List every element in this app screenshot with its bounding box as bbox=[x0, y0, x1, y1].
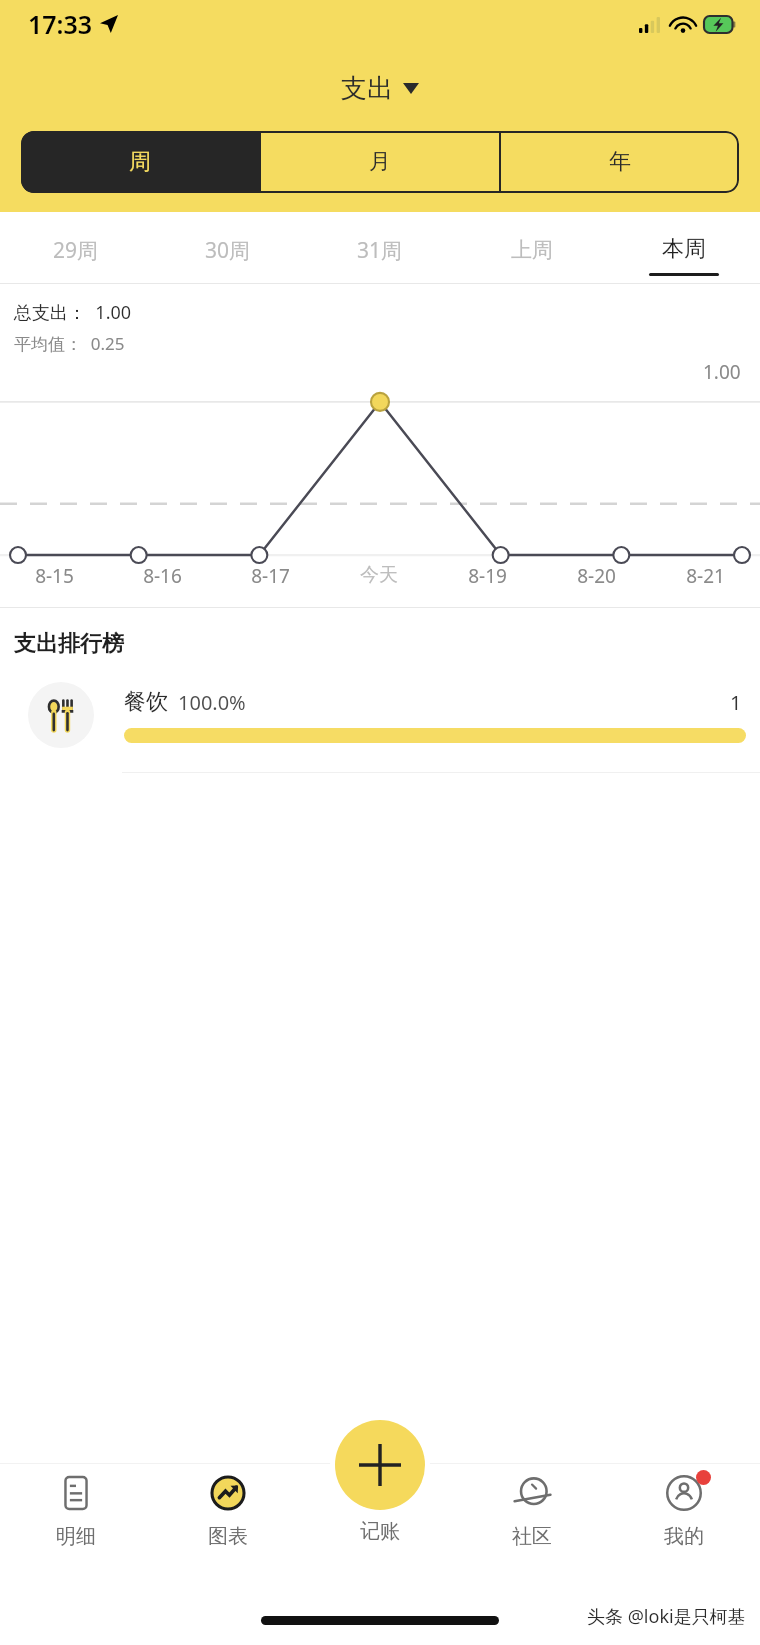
button[interactable]: 餐饮 bbox=[0, 682, 760, 748]
staticText: 餐饮 bbox=[124, 688, 168, 716]
staticText: 平均值： 0.25 bbox=[14, 332, 125, 355]
staticText: 1.00 bbox=[703, 359, 741, 385]
button[interactable]: 记账 Add bbox=[335, 1420, 425, 1510]
button[interactable]: 年 bbox=[501, 131, 739, 193]
button[interactable]: 本周 bbox=[608, 212, 760, 284]
button[interactable]: 30周 bbox=[152, 212, 304, 284]
button[interactable]: 29周 bbox=[0, 212, 152, 284]
staticText: 1 bbox=[730, 689, 742, 716]
staticText: 今天 bbox=[360, 563, 398, 587]
button[interactable]: 图表 bbox=[152, 1467, 304, 1553]
staticText: 总支出： 1.00 bbox=[14, 300, 132, 325]
staticText: 头条 @loki是只柯基 bbox=[587, 1604, 746, 1629]
staticText: 明细 bbox=[56, 1524, 96, 1549]
staticText: 记账 bbox=[360, 1519, 400, 1544]
staticText: 100.0% bbox=[178, 689, 246, 716]
button[interactable]: 我的 bbox=[608, 1467, 760, 1553]
staticText: 周 bbox=[129, 148, 151, 176]
button[interactable]: 社区 bbox=[456, 1467, 608, 1553]
staticText: 8-17 bbox=[251, 563, 290, 589]
staticText: 支出 bbox=[341, 72, 393, 105]
staticText: 8-15 bbox=[35, 563, 74, 589]
staticText: 上周 bbox=[511, 237, 553, 263]
staticText: 31周 bbox=[357, 236, 403, 265]
staticText: 图表 bbox=[208, 1524, 248, 1549]
button[interactable]: 月 bbox=[261, 131, 499, 193]
button[interactable]: 上周 bbox=[456, 212, 608, 284]
staticText: 支出排行榜 bbox=[14, 630, 124, 658]
staticText: 年 bbox=[609, 148, 631, 176]
staticText: 本周 bbox=[662, 235, 706, 263]
button[interactable]: 支出 bbox=[329, 68, 431, 109]
staticText: 社区 bbox=[512, 1524, 552, 1549]
staticText: 30周 bbox=[205, 236, 251, 265]
button[interactable]: 记账 bbox=[304, 1467, 456, 1544]
button[interactable]: 31周 bbox=[304, 212, 456, 284]
staticText: 8-16 bbox=[143, 563, 182, 589]
staticText: 29周 bbox=[53, 236, 99, 265]
staticText: 17:33 bbox=[28, 7, 93, 41]
staticText: 我的 bbox=[664, 1524, 704, 1549]
staticText: 8-21 bbox=[686, 563, 725, 589]
button[interactable]: 明细 bbox=[0, 1467, 152, 1553]
staticText: 8-19 bbox=[468, 563, 507, 589]
staticText: 月 bbox=[369, 148, 391, 176]
button[interactable]: 周 bbox=[21, 131, 259, 193]
staticText: 8-20 bbox=[577, 563, 616, 589]
